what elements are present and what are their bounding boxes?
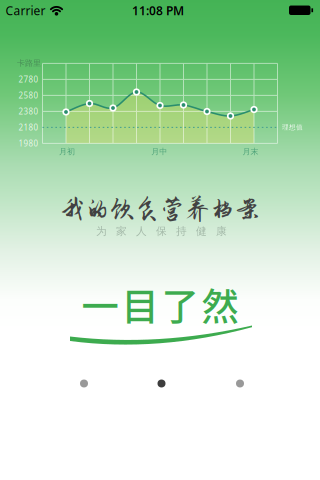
- staticText: 为家人保持健康: [96, 225, 227, 238]
- staticText: 理想值: [282, 123, 303, 131]
- staticText: 2380: [19, 106, 39, 117]
- staticText: Carrier: [5, 2, 45, 18]
- staticText: 2780: [19, 74, 39, 85]
- staticText: 月中: [151, 147, 167, 157]
- staticText: 卡路里: [17, 58, 41, 68]
- staticText: 一目了然: [81, 277, 238, 332]
- button[interactable]: [236, 379, 244, 387]
- staticText: 月末: [242, 147, 258, 157]
- staticText: 2180: [19, 122, 39, 133]
- staticText: 1980: [19, 138, 39, 149]
- button[interactable]: [80, 379, 88, 387]
- button[interactable]: [157, 379, 165, 387]
- staticText: 2580: [19, 90, 39, 101]
- staticText: 我的饮食营养档案: [60, 195, 260, 223]
- staticText: 月初: [59, 147, 75, 157]
- staticText: 11:08 PM: [132, 2, 184, 18]
